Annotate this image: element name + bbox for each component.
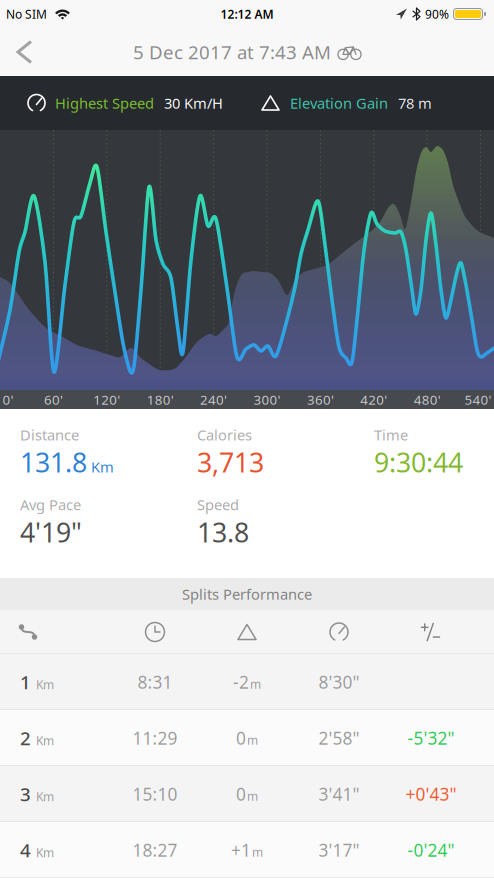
staticText: 420' (360, 391, 387, 408)
staticText: 4 (20, 838, 31, 862)
staticText: 300' (253, 391, 280, 408)
staticText: 3,713 (197, 444, 264, 480)
staticText: 3 (20, 782, 31, 806)
staticText: m (252, 844, 263, 860)
staticText: 11:29 (132, 726, 177, 749)
staticText: 3'41" (318, 782, 359, 805)
staticText: 12:12 AM (220, 6, 273, 22)
staticText: Distance (20, 425, 79, 444)
button[interactable]: Back (0, 29, 43, 74)
staticText: +0'43" (405, 782, 456, 805)
staticText: 120' (93, 391, 120, 408)
staticText: 13.8 (197, 514, 249, 550)
staticText: 3'17" (318, 838, 359, 861)
staticText: 30 Km/H (164, 93, 223, 113)
staticText: 8:31 (137, 670, 172, 693)
staticText: +1 (231, 838, 251, 861)
staticText: 0 (236, 726, 246, 749)
staticText: 0 (236, 782, 246, 805)
staticText: Km (36, 733, 54, 748)
staticText: 0' (2, 391, 13, 408)
staticText: 360' (307, 391, 334, 408)
staticText: 9:30:44 (374, 444, 463, 480)
staticText: Highest Speed (55, 93, 154, 113)
staticText: 18:27 (132, 838, 177, 861)
staticText: 480' (414, 391, 441, 408)
staticText: 540' (464, 391, 491, 408)
staticText: Elevation Gain (290, 93, 388, 113)
staticText: 2'58" (318, 726, 359, 749)
staticText: 240' (200, 391, 227, 408)
staticText: Km (36, 677, 54, 692)
staticText: Km (91, 457, 114, 477)
staticText: -2 (233, 670, 249, 693)
staticText: No SIM (6, 6, 47, 22)
staticText: Speed (197, 495, 239, 514)
staticText: m (247, 788, 258, 804)
staticText: Time (374, 425, 408, 444)
staticText: 131.8 (20, 444, 87, 480)
staticText: 1 (20, 670, 31, 694)
staticText: m (250, 676, 261, 692)
staticText: Avg Pace (20, 495, 81, 514)
staticText: m (247, 732, 258, 748)
staticText: Calories (197, 425, 252, 444)
staticText: 180' (147, 391, 174, 408)
staticText: Km (36, 845, 54, 860)
staticText: Splits Performance (182, 584, 312, 604)
staticText: Km (36, 789, 54, 804)
staticText: 60' (44, 391, 63, 408)
staticText: 15:10 (132, 782, 177, 805)
staticText: -5'32" (407, 726, 454, 749)
staticText: 2 (20, 726, 31, 750)
staticText: 78 m (398, 93, 432, 113)
staticText: 4'19" (20, 514, 82, 550)
staticText: 8'30" (318, 670, 359, 693)
staticText: 90% (425, 6, 449, 22)
staticText: -0'24" (407, 838, 454, 861)
staticText: 5 Dec 2017 at 7:43 AM (133, 40, 331, 64)
